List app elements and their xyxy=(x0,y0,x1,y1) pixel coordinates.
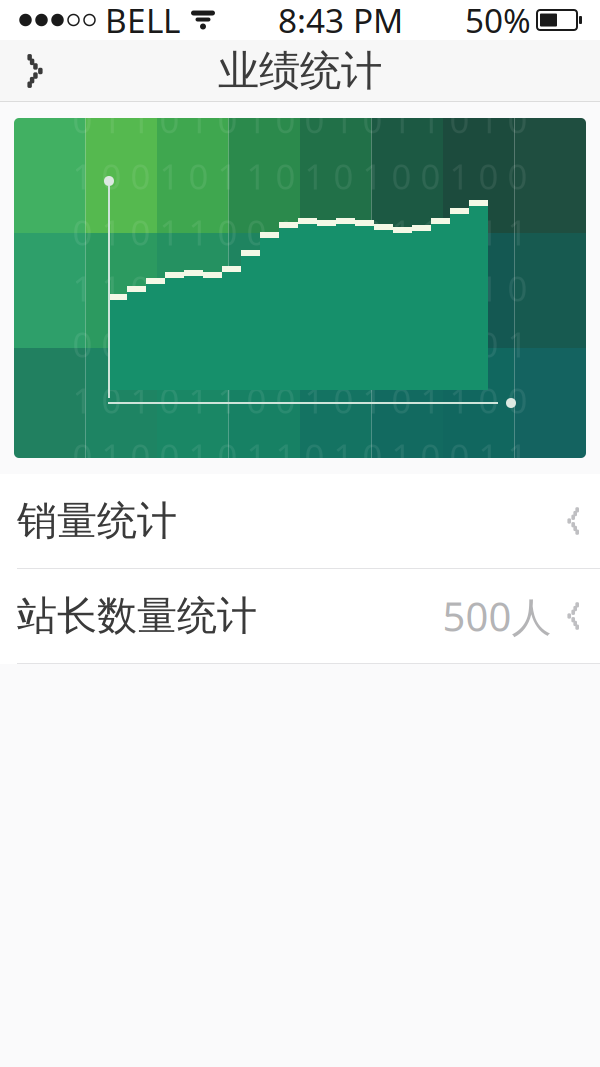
staticText: BELL xyxy=(105,0,180,42)
staticText: 1 0 1 1 0 1 0 0 1 0 1 0 0 1 0 1 xyxy=(72,41,527,87)
staticText: 0 1 1 0 1 0 1 0 0 1 0 1 1 0 1 0 xyxy=(72,97,527,143)
staticText: 销量统计 xyxy=(17,496,177,545)
staticText: 0 1 0 0 1 0 1 1 0 1 0 1 0 0 1 1 xyxy=(72,433,527,479)
staticText: 业绩统计 xyxy=(218,46,382,96)
staticText: 站长数量统计 xyxy=(17,591,257,640)
staticText: 8:43 PM xyxy=(278,0,403,42)
button[interactable]: 站长数量统计 xyxy=(0,569,600,663)
staticText: 1 1 0 0 1 0 1 0 1 1 0 0 1 0 1 0 xyxy=(72,265,527,311)
staticText: 0 0 1 1 0 1 0 1 0 0 1 1 0 1 0 1 xyxy=(72,321,527,367)
staticText: 1 0 1 0 1 1 0 0 1 0 1 0 1 1 0 0 xyxy=(72,377,527,423)
button[interactable]: 销量统计 xyxy=(0,474,600,568)
staticText: 1 1 1 0 0 1 0 1 1 0 1 0 1 0 0 1 xyxy=(72,489,527,535)
staticText: 1 0 0 1 0 1 1 0 1 0 1 0 0 1 0 0 xyxy=(72,153,527,199)
staticText: 500人 xyxy=(442,589,551,642)
button[interactable]: Back xyxy=(0,40,66,102)
staticText: 0 1 0 1 1 0 0 1 0 1 0 1 1 0 1 1 xyxy=(72,209,527,255)
staticText: 50% xyxy=(465,0,531,42)
